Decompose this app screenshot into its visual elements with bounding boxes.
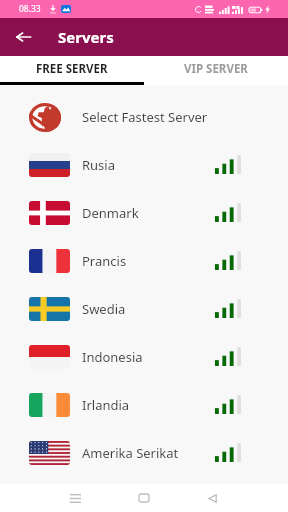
- staticText: FREE SERVER: [36, 61, 108, 77]
- button[interactable]: Irlandia: [0, 381, 288, 429]
- button[interactable]: Home: [126, 490, 162, 506]
- staticText: Amerika Serikat: [82, 444, 179, 462]
- button[interactable]: FREE SERVER: [0, 56, 144, 82]
- button[interactable]: Denmark: [0, 189, 288, 237]
- button[interactable]: Back: [194, 490, 230, 506]
- button[interactable]: Indonesia: [0, 333, 288, 381]
- staticText: Swedia: [82, 300, 126, 318]
- button[interactable]: Navigate up: [0, 18, 46, 56]
- staticText: Rusia: [82, 156, 115, 174]
- button[interactable]: Amerika Serikat: [0, 429, 288, 477]
- button[interactable]: VIP SERVER: [144, 56, 288, 82]
- staticText: Denmark: [82, 204, 139, 222]
- staticText: VIP SERVER: [184, 61, 248, 77]
- button[interactable]: Select Fastest Server: [0, 93, 288, 141]
- button[interactable]: Rusia: [0, 141, 288, 189]
- staticText: Select Fastest Server: [82, 108, 208, 126]
- staticText: Servers: [58, 27, 114, 47]
- staticText: 08.33: [19, 3, 41, 15]
- staticText: Indonesia: [82, 348, 143, 366]
- button[interactable]: Recent apps: [57, 490, 93, 506]
- button[interactable]: Prancis: [0, 237, 288, 285]
- button[interactable]: Swedia: [0, 285, 288, 333]
- staticText: Irlandia: [82, 396, 130, 414]
- staticText: Prancis: [82, 252, 127, 270]
